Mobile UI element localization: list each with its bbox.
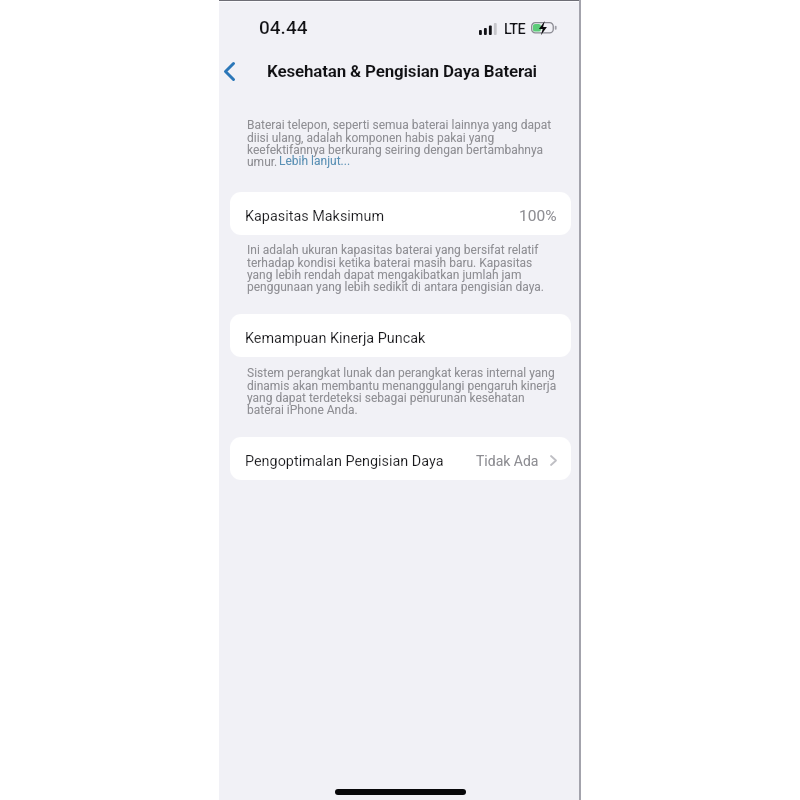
staticText: Tidak Ada	[476, 453, 539, 469]
staticText: Kapasitas Maksimum	[245, 208, 385, 225]
button[interactable]: Back	[220, 57, 238, 85]
button[interactable]: Kapasitas Maksimum	[230, 192, 571, 235]
staticText: LTE	[504, 21, 525, 38]
staticText: Lebih lanjut...	[279, 154, 351, 168]
button[interactable]: Pengoptimalan Pengisian Daya	[230, 437, 571, 480]
staticText: Ini adalah ukuran kapasitas baterai yang…	[247, 243, 544, 294]
staticText: Kemampuan Kinerja Puncak	[245, 330, 426, 347]
staticText: 100%	[519, 207, 557, 225]
staticText: Sistem perangkat lunak dan perangkat ker…	[247, 366, 557, 417]
button[interactable]: Lebih lanjut...	[279, 153, 351, 169]
staticText: Kesehatan & Pengisian Daya Baterai	[267, 61, 537, 81]
button[interactable]: Kemampuan Kinerja Puncak	[230, 314, 571, 357]
staticText: Pengoptimalan Pengisian Daya	[245, 453, 444, 470]
staticText: Baterai telepon, seperti semua baterai l…	[247, 118, 552, 169]
staticText: 04.44	[259, 16, 308, 38]
